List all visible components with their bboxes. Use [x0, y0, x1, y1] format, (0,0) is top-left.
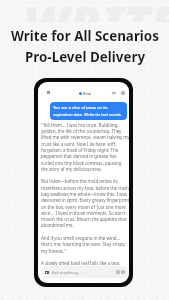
staticText: that's me, haunting the oven. Stay crisp…	[41, 241, 126, 247]
staticText: manifesto across my face, before the tra…	[41, 185, 129, 191]
staticText: bag swallows me whole—know this: I was	[41, 191, 128, 197]
staticText: my friends."	[41, 248, 66, 254]
button[interactable]: Ask anything...	[41, 266, 129, 278]
button[interactable]: Edit	[108, 87, 119, 98]
staticText: Write for All Scenarios Pro-Level Delive…	[11, 27, 159, 66]
staticText: forgotten, a fossil of Friday night. The	[41, 147, 119, 153]
button[interactable]: Menu	[43, 87, 54, 98]
staticText: slice'... I lived in those moments. So d…	[41, 210, 126, 216]
staticText: mourn the crust. Mourn the appetite that	[41, 216, 127, 222]
button[interactable]: Kimi	[79, 90, 92, 96]
button[interactable]: Profile	[117, 87, 128, 98]
staticText: the story of my deliciousness.	[41, 166, 102, 172]
staticText: A slowly dried basil leaf falls like a t…	[41, 260, 120, 266]
staticText: golden, the life of the countertop. They	[41, 128, 122, 134]
staticText: Ask anything...	[52, 269, 81, 275]
button[interactable]: Send	[121, 270, 125, 274]
button[interactable]: Voice input	[116, 270, 120, 274]
staticText: "Tell them... I was hot once. Bubbling,	[41, 122, 119, 128]
staticText: And if you smell oregano in the wind...	[41, 235, 120, 241]
staticText: devoured in spirit. Every greasy fingerp…	[41, 197, 129, 203]
staticText: crust like a saint. Now I lie here: stif…	[41, 141, 117, 147]
staticText: pepperoni that danced in grease has	[41, 153, 117, 159]
staticText: abandoned me.	[41, 222, 74, 228]
staticText: curled into tiny black commas, pausing	[41, 160, 122, 166]
staticText: WRITE	[24, 0, 169, 22]
staticText: Kimi	[83, 91, 92, 96]
staticText: You are a slice of pizza on its expirati…	[53, 105, 124, 117]
staticText: on the box, every moan of 'just one more	[41, 204, 126, 210]
staticText: lifted me with reverence, steam halving …	[41, 134, 129, 140]
staticText: But listen—before the mold writes its	[41, 178, 118, 184]
